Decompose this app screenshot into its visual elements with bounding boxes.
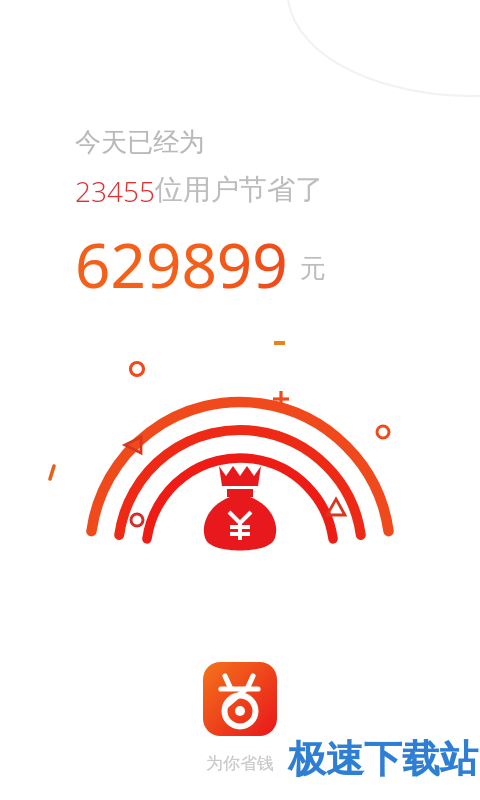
button[interactable]: Savings summary screen: [0, 0, 480, 800]
